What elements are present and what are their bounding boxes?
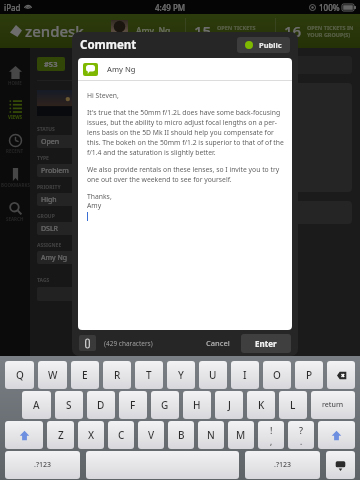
staticText: .?123 (34, 460, 52, 470)
staticText: 08 2011 09:31 (103, 90, 146, 99)
staticText: Z (58, 428, 64, 442)
button[interactable]: J (215, 391, 243, 419)
button[interactable] (86, 451, 239, 479)
button[interactable]: P (295, 361, 323, 389)
button[interactable]: Problem (37, 164, 81, 177)
staticText: OPEN TICKETS (217, 24, 256, 31)
button[interactable]: .?123 (245, 451, 320, 479)
staticText: V (148, 428, 155, 442)
staticText: R (114, 368, 121, 382)
staticText: W (48, 368, 58, 382)
button[interactable]: N (198, 421, 224, 449)
staticText: J (228, 398, 231, 412)
staticText: .?123 (274, 460, 292, 470)
button[interactable]: T (135, 361, 163, 389)
staticText: Problem (41, 166, 69, 176)
button[interactable]: S (55, 391, 83, 419)
button[interactable]: K (247, 391, 275, 419)
staticText: It's true that the 50mm f/1.2L does have… (87, 108, 285, 157)
button[interactable]: Public (237, 37, 290, 53)
staticText: ASSIGNEE (37, 242, 62, 249)
staticText: Thanks, (87, 192, 112, 201)
staticText: X (88, 428, 95, 442)
button[interactable]: H (183, 391, 211, 419)
staticText: GROUP (37, 213, 55, 220)
staticText: Amy Ng (41, 253, 68, 263)
button[interactable]: VIEWS (0, 96, 30, 130)
button[interactable]: U (199, 361, 227, 389)
staticText: 4:49 PM (155, 2, 186, 13)
staticText: Public (259, 40, 282, 50)
button[interactable]: A (22, 391, 51, 419)
staticText: High (41, 195, 57, 205)
staticText: Amy Ng (136, 25, 171, 37)
button[interactable]: return (311, 391, 355, 419)
staticText: G (161, 398, 169, 412)
button[interactable]: Z (47, 421, 74, 449)
button[interactable]: Cancel (199, 335, 237, 351)
button[interactable]: SEARCH (0, 198, 30, 232)
staticText: TAGS (37, 277, 50, 284)
button[interactable]: High (37, 193, 81, 206)
button[interactable]: Backspace (327, 361, 355, 389)
button[interactable]: Shift (5, 421, 43, 449)
staticText: SEARCH (6, 216, 24, 222)
staticText: D (97, 398, 105, 412)
button[interactable]: BOOKMARKS (0, 164, 30, 198)
button[interactable]: V (138, 421, 164, 449)
staticText: We also provide rentals on these lenses,… (87, 165, 285, 184)
staticText: T (146, 368, 152, 382)
button[interactable]: B (168, 421, 194, 449)
button[interactable]: Amy Ng (37, 251, 81, 264)
button[interactable]: I (231, 361, 259, 389)
staticText: 16 (284, 21, 302, 41)
staticText: 15 (194, 21, 212, 41)
staticText: Comment (80, 37, 137, 53)
button[interactable]: ? (288, 421, 314, 449)
button[interactable]: R (103, 361, 131, 389)
button[interactable]: RECENT (0, 130, 30, 164)
staticText: M (236, 428, 246, 442)
staticText: ! (270, 424, 273, 436)
button[interactable]: O (263, 361, 291, 389)
button[interactable]: D (87, 391, 115, 419)
button[interactable]: Y (167, 361, 195, 389)
staticText: k II, but I've at Paper " It seems a onl… (103, 104, 144, 185)
button[interactable]: .?123 (5, 451, 80, 479)
staticText: Open (41, 137, 60, 147)
button[interactable]: ! (258, 421, 284, 449)
staticText: #53 (44, 59, 58, 69)
staticText: A (33, 398, 40, 412)
staticText: Amy Ng (107, 64, 136, 74)
staticText: Enter (255, 338, 277, 349)
staticText: P (306, 368, 313, 382)
staticText: Cancel (206, 338, 230, 348)
button[interactable]: Open (37, 135, 81, 148)
button[interactable]: F (119, 391, 147, 419)
staticText: N (207, 428, 215, 442)
button[interactable]: Shift (318, 421, 355, 449)
button[interactable]: E (71, 361, 99, 389)
button[interactable]: Hide keyboard (326, 451, 355, 479)
staticText: . (300, 436, 303, 447)
button[interactable]: DSLR (37, 222, 81, 235)
button[interactable]: Q (5, 361, 34, 389)
button[interactable]: M (228, 421, 254, 449)
staticText: H (193, 398, 201, 412)
staticText: YOUR GROUP(S) (307, 31, 351, 38)
staticText: RECENT (6, 148, 24, 154)
button[interactable]: G (151, 391, 179, 419)
button[interactable]: Attach file (79, 335, 96, 351)
staticText: ASSIGNED TO YOU (217, 31, 267, 38)
button[interactable]: X (78, 421, 104, 449)
button[interactable]: W (38, 361, 67, 389)
staticText: K (258, 398, 265, 412)
button[interactable]: Enter (241, 334, 291, 353)
staticText: OPEN TICKETS IN (307, 24, 354, 31)
staticText: iPad (4, 2, 21, 13)
button[interactable]: L (279, 391, 307, 419)
button[interactable]: C (108, 421, 134, 449)
button[interactable]: HOME (0, 62, 30, 96)
staticText: B (178, 428, 185, 442)
staticText: return (322, 400, 344, 410)
